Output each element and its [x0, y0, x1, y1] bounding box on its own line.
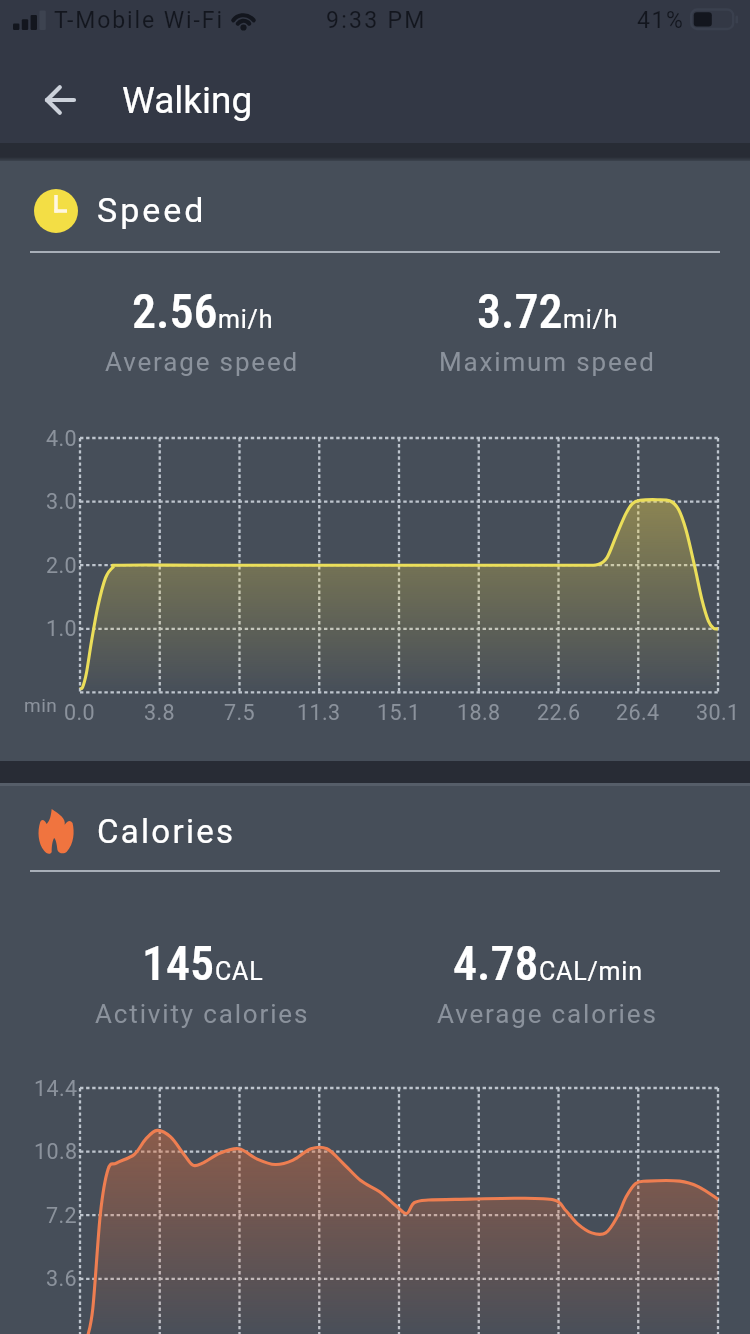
staticText: 30.1: [696, 700, 740, 725]
staticText: Maximum speed: [439, 347, 656, 377]
staticText: 41%: [637, 7, 685, 34]
staticText: 2.56: [132, 283, 218, 339]
staticText: 26.4: [616, 700, 660, 725]
staticText: 7.5: [224, 700, 256, 725]
staticText: Activity calories: [95, 999, 310, 1029]
staticText: CAL/min: [539, 957, 643, 986]
staticText: 9:33 PM: [326, 7, 427, 34]
staticText: Calories: [97, 812, 236, 851]
staticText: 14.4: [34, 1076, 78, 1101]
staticText: mi/h: [563, 305, 619, 334]
staticText: 15.1: [377, 700, 421, 725]
staticText: CAL: [215, 957, 264, 986]
staticText: 4.78: [453, 935, 539, 991]
staticText: 7.2: [46, 1203, 78, 1228]
staticText: 1.0: [46, 616, 78, 641]
staticText: 11.3: [297, 700, 341, 725]
staticText: 2.0: [46, 553, 78, 578]
button[interactable]: Back: [30, 70, 90, 130]
staticText: Average speed: [105, 347, 300, 377]
staticText: Speed: [97, 190, 207, 230]
staticText: 10.8: [34, 1139, 78, 1164]
staticText: Average calories: [437, 999, 658, 1029]
staticText: Walking: [122, 79, 253, 122]
staticText: 145: [142, 935, 215, 991]
staticText: 18.8: [457, 700, 501, 725]
staticText: 22.6: [537, 700, 581, 725]
staticText: 3.6: [46, 1266, 78, 1291]
staticText: T-Mobile Wi-Fi: [54, 7, 224, 34]
staticText: 0.0: [64, 700, 96, 725]
staticText: mi/h: [218, 305, 274, 334]
staticText: 3.72: [477, 283, 563, 339]
staticText: 3.0: [46, 489, 78, 514]
staticText: min: [24, 694, 58, 716]
staticText: 4.0: [46, 426, 78, 451]
staticText: 3.8: [144, 700, 176, 725]
